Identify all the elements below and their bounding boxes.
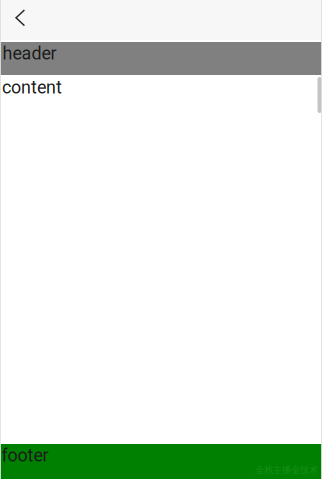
staticText: 全栈主播金技术 xyxy=(255,464,318,476)
staticText: footer xyxy=(1,445,48,466)
staticText: header xyxy=(2,43,56,64)
button[interactable]: Back xyxy=(0,0,40,40)
staticText: content xyxy=(2,77,62,98)
